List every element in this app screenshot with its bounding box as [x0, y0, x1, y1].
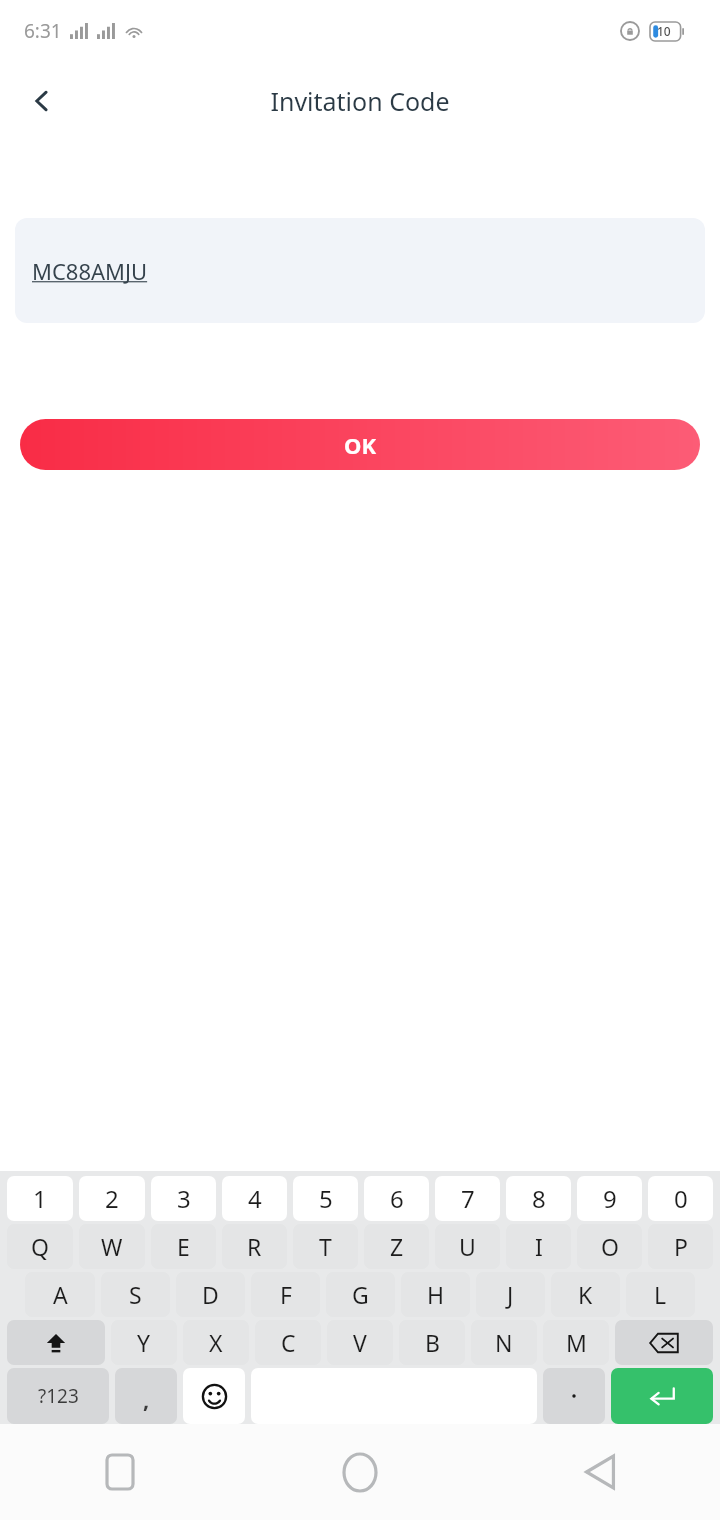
staticText: 9 — [603, 1182, 617, 1215]
staticText: 3 — [177, 1182, 191, 1215]
button[interactable]: N — [471, 1320, 537, 1365]
button[interactable]: F — [251, 1272, 320, 1317]
staticText: MC88AMJU — [32, 256, 148, 286]
staticText: N — [495, 1327, 513, 1358]
button[interactable]: 8 — [506, 1176, 571, 1221]
staticText: W — [101, 1231, 123, 1262]
button[interactable]: C — [255, 1320, 321, 1365]
button[interactable]: 1 — [7, 1176, 73, 1221]
button[interactable] — [543, 1368, 605, 1424]
button[interactable]: Recent apps — [0, 1424, 240, 1520]
button[interactable]: 7 — [435, 1176, 500, 1221]
button[interactable]: U — [435, 1224, 500, 1269]
button[interactable]: X — [183, 1320, 249, 1365]
staticText: R — [247, 1231, 262, 1262]
button[interactable]: R — [222, 1224, 287, 1269]
staticText: 0 — [674, 1182, 688, 1215]
staticText: OK — [344, 430, 377, 460]
button[interactable]: ?123 — [7, 1368, 109, 1424]
staticText: F — [280, 1279, 292, 1310]
button[interactable]: G — [326, 1272, 395, 1317]
staticText: 10 — [657, 23, 671, 39]
button[interactable]: 0 — [648, 1176, 713, 1221]
button[interactable]: K — [551, 1272, 620, 1317]
button[interactable]: 3 — [151, 1176, 216, 1221]
button[interactable]: MC88AMJU — [15, 218, 705, 323]
staticText: O — [601, 1231, 619, 1262]
button[interactable]: OK — [20, 419, 700, 470]
staticText: B — [425, 1327, 440, 1358]
staticText: 4 — [248, 1182, 262, 1215]
staticText: Y — [137, 1327, 151, 1358]
staticText: A — [53, 1279, 68, 1310]
staticText: J — [507, 1279, 514, 1310]
button[interactable]: Z — [364, 1224, 429, 1269]
button[interactable]: 4 — [222, 1176, 287, 1221]
staticText: 1 — [33, 1182, 47, 1215]
staticText: X — [209, 1327, 223, 1358]
staticText: K — [578, 1279, 593, 1310]
staticText: T — [319, 1231, 332, 1262]
staticText: 2 — [105, 1182, 119, 1215]
button[interactable]: Back — [14, 73, 70, 129]
staticText: 7 — [461, 1182, 475, 1215]
staticText: S — [129, 1279, 142, 1310]
staticText: L — [654, 1279, 667, 1310]
staticText: 6:31 — [24, 18, 62, 44]
button[interactable]: Y — [111, 1320, 177, 1365]
button[interactable]: Emoji — [183, 1368, 245, 1424]
button[interactable]: V — [327, 1320, 393, 1365]
button[interactable]: 2 — [79, 1176, 145, 1221]
button[interactable]: L — [626, 1272, 695, 1317]
staticText: 6 — [390, 1182, 404, 1215]
staticText: ?123 — [38, 1383, 79, 1409]
button[interactable]: M — [543, 1320, 609, 1365]
staticText: Z — [390, 1231, 404, 1262]
button[interactable]: O — [577, 1224, 642, 1269]
button[interactable]: Back — [480, 1424, 720, 1520]
staticText: C — [281, 1327, 296, 1358]
button[interactable]: H — [401, 1272, 470, 1317]
button[interactable]: Shift — [7, 1320, 105, 1365]
staticText: H — [427, 1279, 445, 1310]
staticText: I — [535, 1231, 543, 1262]
button[interactable]: S — [101, 1272, 170, 1317]
staticText: Invitation Code — [270, 84, 450, 118]
staticText: G — [352, 1279, 369, 1310]
button[interactable]: T — [293, 1224, 358, 1269]
button[interactable]: B — [399, 1320, 465, 1365]
staticText: E — [177, 1231, 190, 1262]
staticText: D — [202, 1279, 219, 1310]
button[interactable]: P — [648, 1224, 713, 1269]
button[interactable]: E — [151, 1224, 216, 1269]
button[interactable]: Enter — [611, 1368, 713, 1424]
staticText: , — [143, 1384, 150, 1414]
button[interactable]: Backspace — [615, 1320, 713, 1365]
button[interactable]: J — [476, 1272, 545, 1317]
button[interactable]: D — [176, 1272, 245, 1317]
button[interactable]: 5 — [293, 1176, 358, 1221]
button[interactable]: Home — [240, 1424, 480, 1520]
button[interactable]: 6 — [364, 1176, 429, 1221]
staticText: U — [459, 1231, 476, 1262]
staticText: 5 — [319, 1182, 333, 1215]
button[interactable]: I — [506, 1224, 571, 1269]
button[interactable]: W — [79, 1224, 145, 1269]
button[interactable]: , — [115, 1368, 177, 1424]
staticText: P — [674, 1231, 688, 1262]
button[interactable]: A — [25, 1272, 95, 1317]
staticText: V — [353, 1327, 367, 1358]
staticText: M — [566, 1327, 587, 1358]
staticText: Q — [31, 1231, 49, 1262]
button[interactable]: 9 — [577, 1176, 642, 1221]
button[interactable]: Q — [7, 1224, 73, 1269]
staticText: 8 — [532, 1182, 546, 1215]
